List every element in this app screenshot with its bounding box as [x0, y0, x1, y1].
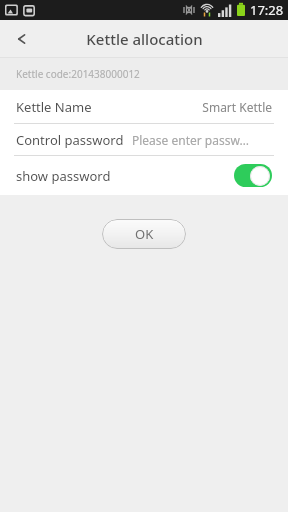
staticText: show password: [16, 167, 111, 185]
staticText: 17:28: [250, 1, 284, 19]
button[interactable]: Control password: [0, 124, 288, 155]
staticText: Kettle Name: [16, 98, 92, 116]
button[interactable]: show password: [0, 156, 288, 195]
staticText: Smart Kettle: [182, 99, 272, 115]
button[interactable]: Back: [0, 20, 44, 58]
staticText: OK: [135, 225, 154, 243]
staticText: Kettle code:201438000012: [16, 67, 140, 81]
button[interactable]: Show password toggle: [234, 164, 272, 187]
button[interactable]: Kettle Name: [0, 90, 288, 123]
staticText: Kettle allocation: [86, 29, 203, 49]
button[interactable]: OK: [102, 219, 186, 249]
staticText: Control password: [16, 131, 124, 149]
staticText: Please enter passw…: [132, 132, 249, 148]
